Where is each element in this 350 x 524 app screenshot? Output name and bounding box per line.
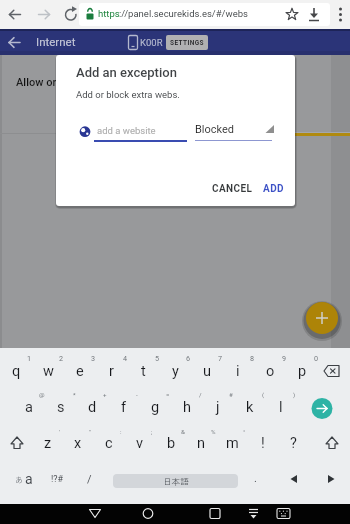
staticText: . — [254, 472, 257, 485]
button[interactable]: p — [287, 354, 317, 388]
button[interactable] — [4, 3, 26, 25]
staticText: x — [74, 435, 82, 452]
staticText: CANCEL — [212, 183, 253, 195]
button[interactable]: y — [160, 354, 190, 388]
staticText: ? — [290, 435, 297, 452]
button[interactable] — [204, 506, 226, 523]
button[interactable]: CANCEL — [204, 176, 260, 202]
button[interactable]: m — [218, 426, 246, 460]
button[interactable]: o — [255, 354, 285, 388]
button[interactable]: t — [128, 354, 158, 388]
staticText: @ — [39, 391, 45, 398]
staticText: Internet — [36, 35, 76, 48]
staticText: 8 — [250, 354, 255, 362]
staticText: t — [141, 363, 146, 380]
button[interactable] — [333, 3, 348, 26]
staticText: ://panel.securekids.es/#/webs — [119, 8, 248, 19]
staticText: u — [203, 363, 211, 380]
staticText: " — [89, 428, 91, 435]
staticText: o — [266, 363, 275, 380]
staticText: 9 — [282, 354, 287, 362]
staticText: i — [236, 363, 240, 380]
button[interactable]: u — [192, 354, 222, 388]
button[interactable] — [33, 3, 55, 25]
staticText: 4 — [123, 354, 128, 362]
button[interactable] — [195, 120, 274, 140]
button[interactable] — [273, 506, 295, 523]
button[interactable]: v — [126, 426, 154, 460]
button[interactable]: https — [79, 3, 330, 26]
button[interactable]: i — [223, 354, 253, 388]
button[interactable]: / — [77, 467, 101, 491]
staticText: 日本語 — [163, 475, 189, 487]
staticText: ! — [261, 435, 265, 452]
staticText: & — [181, 428, 185, 435]
button[interactable]: q — [1, 354, 31, 388]
button[interactable]: r — [96, 354, 126, 388]
button[interactable]: j — [203, 390, 233, 424]
button[interactable]: c — [95, 426, 123, 460]
staticText: w — [43, 363, 54, 380]
button[interactable] — [78, 121, 188, 143]
staticText: * — [73, 391, 76, 398]
staticText: ; — [151, 428, 153, 435]
button[interactable] — [5, 32, 25, 52]
button[interactable]: k — [235, 390, 265, 424]
staticText: !?# — [51, 474, 64, 485]
staticText: j — [216, 399, 220, 416]
button[interactable] — [137, 506, 159, 523]
staticText: p — [298, 363, 307, 380]
button[interactable]: n — [187, 426, 215, 460]
staticText: k — [246, 399, 254, 416]
staticText: + — [103, 391, 107, 398]
button[interactable]: a — [14, 390, 44, 424]
staticText: : — [120, 428, 122, 435]
button[interactable]: e — [65, 354, 95, 388]
staticText: s — [57, 399, 65, 416]
staticText: - — [136, 391, 138, 398]
staticText: 6 — [186, 354, 191, 362]
staticText: K00R — [140, 37, 163, 48]
button[interactable]: s — [46, 390, 76, 424]
button[interactable]: b — [157, 426, 185, 460]
button[interactable]: f — [109, 390, 139, 424]
staticText: y — [172, 363, 179, 380]
button[interactable] — [84, 506, 106, 523]
staticText: ' — [59, 428, 61, 435]
button[interactable]: . — [245, 466, 265, 490]
staticText: Blocked — [195, 123, 235, 136]
button[interactable]: w — [33, 354, 63, 388]
button[interactable]: ADD — [255, 176, 291, 202]
button[interactable]: d — [77, 390, 107, 424]
button[interactable] — [243, 506, 265, 523]
staticText: / — [87, 473, 92, 486]
button[interactable]: SETTINGS — [166, 35, 208, 50]
staticText: n — [197, 435, 206, 452]
button[interactable] — [311, 398, 333, 420]
staticText: 7 — [218, 354, 223, 362]
button[interactable]: ! — [249, 426, 277, 460]
button[interactable]: 日本語 — [113, 474, 238, 488]
staticText: Add or block extra webs. — [76, 89, 180, 100]
button[interactable] — [60, 3, 82, 25]
button[interactable] — [306, 302, 338, 334]
button[interactable]: ? — [279, 426, 307, 460]
staticText: d — [88, 399, 97, 416]
button[interactable]: h — [172, 390, 202, 424]
staticText: / — [199, 391, 202, 398]
staticText: z — [44, 435, 52, 452]
staticText: a — [25, 471, 33, 487]
button[interactable]: !?# — [43, 467, 71, 491]
button[interactable]: z — [34, 426, 62, 460]
staticText: # — [229, 391, 233, 398]
staticText: 3 — [91, 354, 96, 362]
staticText: v — [136, 435, 144, 452]
button[interactable]: g — [140, 390, 170, 424]
staticText: ( — [262, 391, 265, 398]
button[interactable]: x — [64, 426, 92, 460]
staticText: = — [166, 391, 170, 398]
button[interactable]: l — [266, 390, 296, 424]
staticText: g — [151, 399, 160, 416]
staticText: 0 — [314, 354, 319, 362]
button[interactable]: a — [21, 467, 37, 491]
